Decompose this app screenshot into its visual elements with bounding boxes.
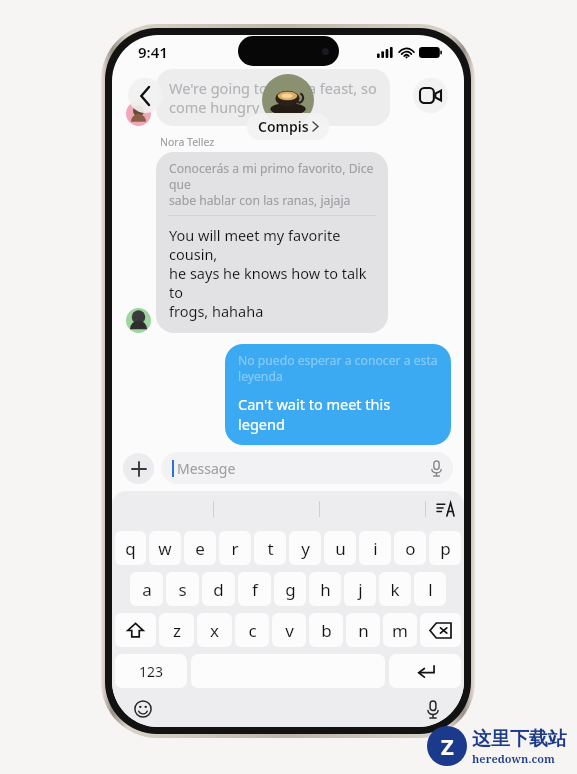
button[interactable]: Compis bbox=[258, 117, 318, 136]
staticText: Nora Tellez bbox=[160, 135, 215, 149]
staticText: Message bbox=[177, 459, 236, 478]
staticText: y bbox=[301, 537, 310, 560]
button[interactable]: f bbox=[238, 572, 271, 606]
staticText: 9:41 bbox=[138, 42, 168, 62]
button[interactable]: p bbox=[429, 531, 461, 565]
staticText: t bbox=[267, 537, 274, 560]
button[interactable]: y bbox=[289, 531, 321, 565]
staticText: w bbox=[158, 537, 172, 560]
button[interactable]: m bbox=[383, 613, 417, 647]
button[interactable]: Voice input bbox=[420, 696, 446, 722]
staticText: z bbox=[173, 619, 181, 642]
staticText: q bbox=[125, 537, 136, 560]
staticText: n bbox=[358, 619, 369, 642]
staticText: i bbox=[373, 537, 378, 560]
button[interactable]: v bbox=[272, 613, 306, 647]
staticText: v bbox=[285, 619, 294, 642]
staticText: d bbox=[213, 578, 224, 601]
button[interactable]: c bbox=[235, 613, 269, 647]
button[interactable]: x bbox=[197, 613, 232, 647]
button[interactable]: FaceTime video call bbox=[413, 78, 448, 113]
button[interactable]: Shift bbox=[115, 613, 156, 647]
staticText: o bbox=[405, 537, 416, 560]
button[interactable]: Group photo bbox=[262, 74, 314, 126]
button[interactable]: i bbox=[359, 531, 391, 565]
button[interactable]: q bbox=[115, 531, 146, 565]
button[interactable]: d bbox=[202, 572, 235, 606]
staticText: 这里下载站 bbox=[472, 727, 567, 751]
button[interactable]: t bbox=[254, 531, 286, 565]
button[interactable]: z bbox=[159, 613, 194, 647]
staticText: p bbox=[440, 537, 451, 560]
button[interactable]: n bbox=[346, 613, 380, 647]
button[interactable]: b bbox=[309, 613, 343, 647]
button[interactable]: l bbox=[414, 572, 446, 606]
staticText: Conocerás a mi primo favorito, Dice que … bbox=[169, 160, 375, 208]
staticText: 123 bbox=[139, 662, 164, 681]
staticText: f bbox=[252, 578, 258, 601]
button[interactable]: Emoji bbox=[130, 696, 156, 722]
button[interactable]: No puedo esperar a conocer a esta leyend… bbox=[225, 344, 451, 445]
staticText: e bbox=[195, 537, 205, 560]
button[interactable]: w bbox=[149, 531, 181, 565]
staticText: Compis bbox=[258, 117, 309, 136]
staticText: u bbox=[335, 537, 346, 560]
button[interactable]: Text formatting bbox=[432, 496, 458, 522]
staticText: You will meet my favorite cousin, he say… bbox=[169, 225, 375, 322]
button[interactable]: Conocerás a mi primo favorito, Dice que … bbox=[156, 152, 388, 333]
staticText: x bbox=[210, 619, 219, 642]
button[interactable]: We're going to have a feast, so come hun… bbox=[169, 78, 377, 117]
button[interactable]: Return bbox=[389, 654, 461, 688]
other: Dictate bbox=[431, 461, 442, 476]
staticText: m bbox=[392, 619, 408, 642]
button[interactable]: a bbox=[130, 572, 163, 606]
button[interactable]: Delete bbox=[420, 613, 461, 647]
button[interactable]: h bbox=[309, 572, 341, 606]
staticText: k bbox=[390, 578, 400, 601]
button[interactable]: o bbox=[394, 531, 426, 565]
button[interactable]: j bbox=[344, 572, 376, 606]
staticText: heredown.com bbox=[472, 751, 555, 766]
staticText: g bbox=[285, 578, 296, 601]
button[interactable]: Back bbox=[128, 78, 163, 113]
button[interactable]: s bbox=[166, 572, 199, 606]
button[interactable]: r bbox=[219, 531, 251, 565]
staticText: h bbox=[320, 578, 331, 601]
button[interactable]: e bbox=[184, 531, 216, 565]
button[interactable]: k bbox=[379, 572, 411, 606]
staticText: r bbox=[231, 537, 239, 560]
staticText: Can't wait to meet this legend bbox=[238, 394, 438, 434]
staticText: l bbox=[428, 578, 433, 601]
staticText: a bbox=[142, 578, 152, 601]
staticText: b bbox=[321, 619, 332, 642]
staticText: c bbox=[248, 619, 257, 642]
button[interactable]: 123 bbox=[115, 654, 187, 688]
button[interactable]: Add attachment bbox=[123, 453, 154, 484]
button[interactable]: u bbox=[324, 531, 356, 565]
button[interactable]: g bbox=[274, 572, 306, 606]
staticText: s bbox=[178, 578, 187, 601]
staticText: No puedo esperar a conocer a esta leyend… bbox=[238, 352, 438, 384]
staticText: Z bbox=[441, 731, 454, 761]
staticText: We're going to have a feast, so come hun… bbox=[169, 78, 377, 117]
staticText: j bbox=[358, 578, 363, 601]
button[interactable]: Message bbox=[172, 452, 442, 484]
